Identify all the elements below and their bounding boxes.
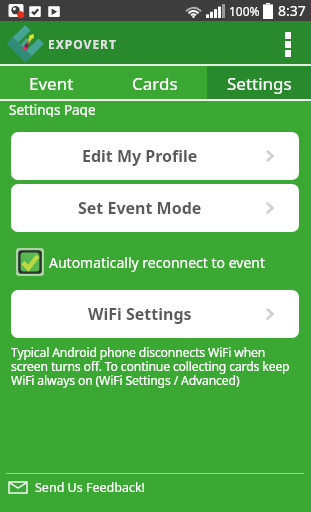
staticText: 100% xyxy=(229,3,260,19)
staticText: Cards xyxy=(132,72,178,95)
button[interactable]: Send Us Feedback! xyxy=(9,474,311,500)
staticText: Automatically reconnect to event xyxy=(49,253,266,272)
button[interactable]: WiFi Settings xyxy=(11,290,299,338)
staticText: WiFi Settings xyxy=(88,303,192,325)
staticText: EXPOVERT xyxy=(48,36,117,52)
staticText: Settings xyxy=(227,72,292,95)
button[interactable]: Settings xyxy=(207,66,311,101)
staticText: 8:37 xyxy=(278,1,306,20)
button[interactable]: Set Event Mode xyxy=(11,184,299,232)
staticText: Edit My Profile xyxy=(82,145,198,167)
button[interactable]: Automatically reconnect to event xyxy=(16,248,299,276)
staticText: Send Us Feedback! xyxy=(35,479,145,496)
button[interactable]: More options xyxy=(273,29,303,59)
staticText: Event xyxy=(29,72,74,95)
staticText: Typical Android phone disconnects WiFi w… xyxy=(11,344,293,389)
staticText: Settings Page xyxy=(9,101,96,117)
button[interactable]: Edit My Profile xyxy=(11,132,299,180)
staticText: Set Event Mode xyxy=(78,197,202,219)
button[interactable]: Event xyxy=(0,66,103,101)
button[interactable]: Cards xyxy=(103,66,207,101)
